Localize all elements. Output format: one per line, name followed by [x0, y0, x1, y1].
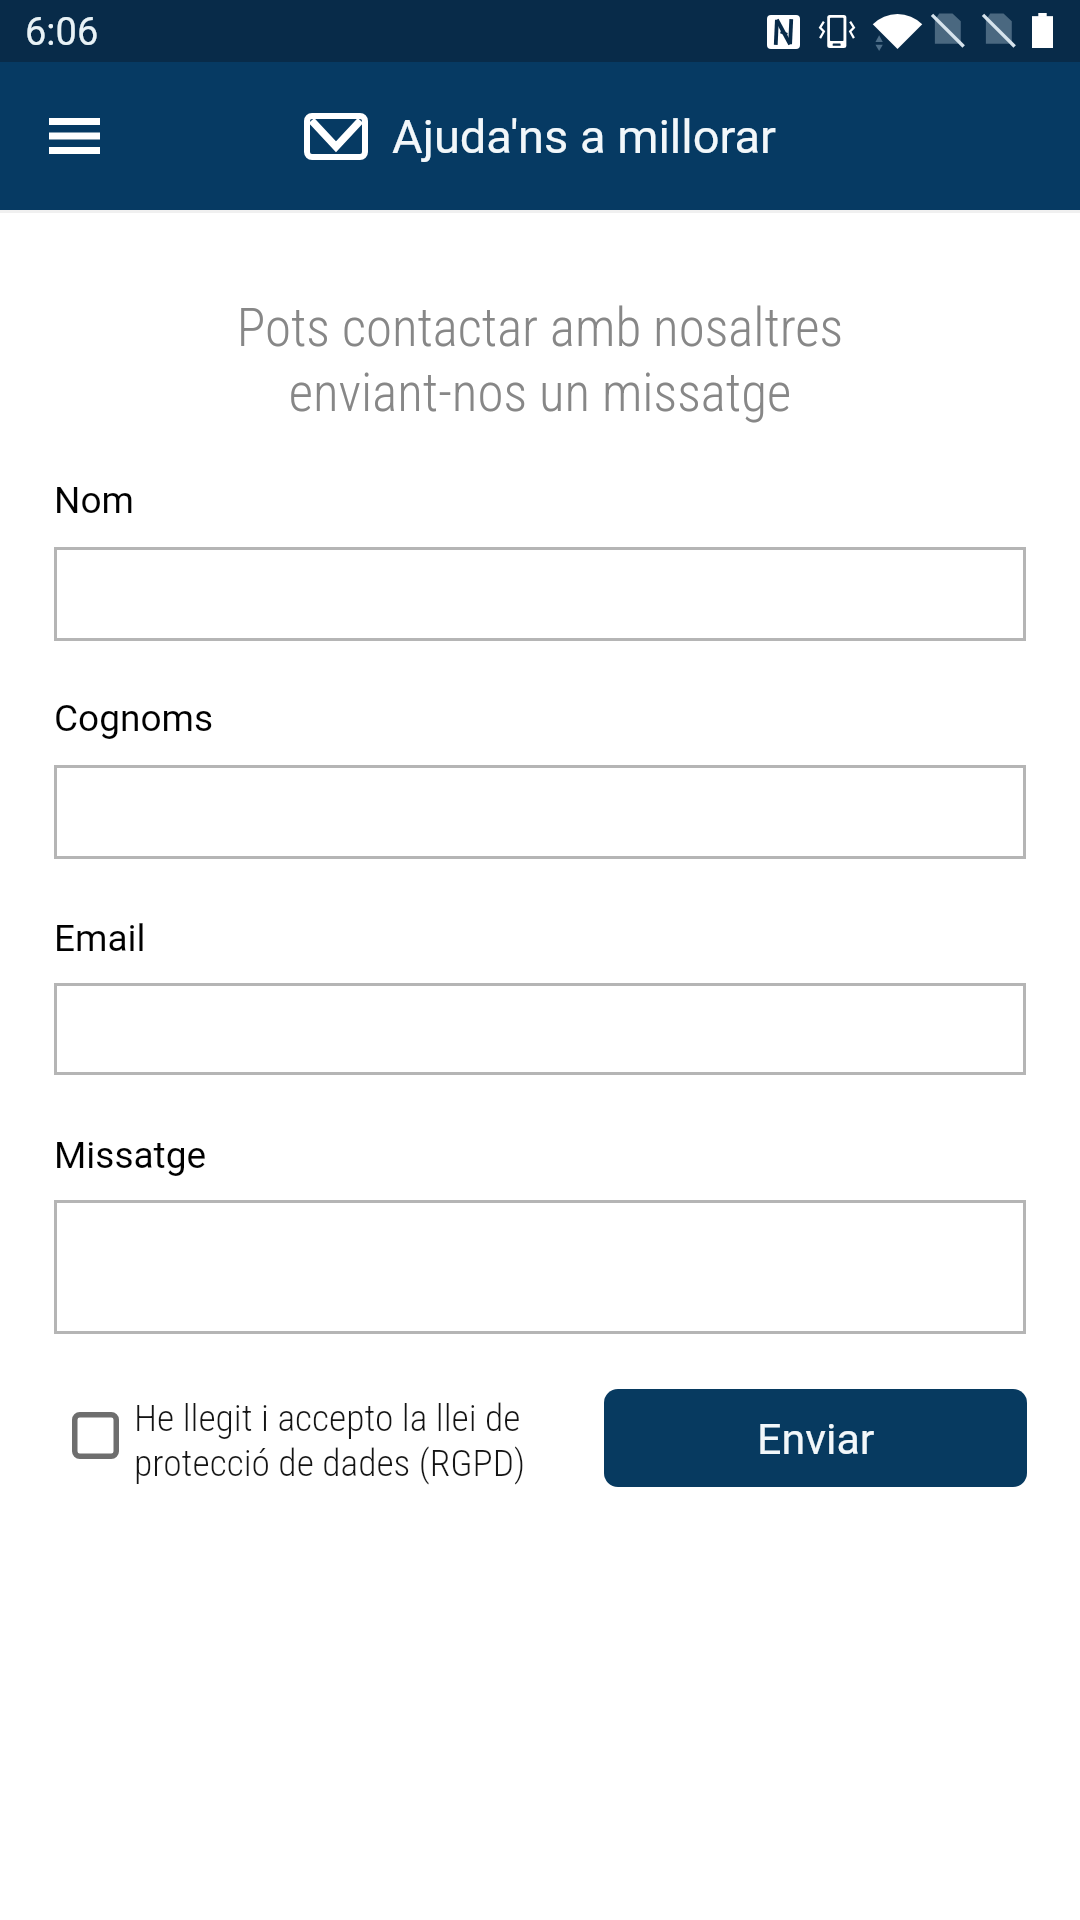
button[interactable]	[54, 983, 1026, 1075]
button[interactable]	[54, 547, 1026, 641]
staticText: Pots contactar amb nosaltres enviant-nos…	[0, 297, 1080, 424]
staticText: Enviar	[757, 1414, 875, 1464]
staticText: Cognoms	[54, 697, 214, 740]
button[interactable]: He llegit i accepto la llei de protecció…	[60, 1394, 540, 1488]
staticText: Ajuda'ns a millorar	[392, 109, 777, 164]
staticText: Email	[54, 917, 146, 960]
button[interactable]	[54, 765, 1026, 859]
staticText: Missatge	[54, 1134, 207, 1177]
button[interactable]	[54, 1200, 1026, 1334]
staticText: Nom	[54, 479, 134, 522]
staticText: 6:06	[25, 10, 99, 55]
staticText: He llegit i accepto la llei de protecció…	[134, 1396, 526, 1486]
button[interactable]: Open navigation menu	[22, 84, 126, 188]
button[interactable]: Enviar	[604, 1389, 1027, 1487]
